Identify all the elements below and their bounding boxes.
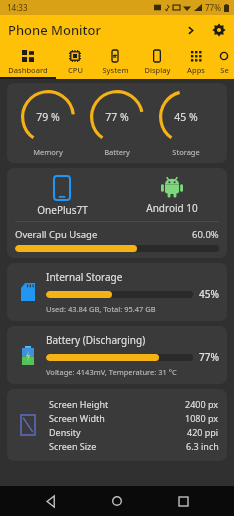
staticText: Screen Width <box>49 412 105 424</box>
staticText: 420 ppi <box>187 426 219 438</box>
button[interactable]: Screen Height <box>7 389 227 461</box>
staticText: System <box>102 65 129 75</box>
staticText: Overall Cpu Usage <box>15 228 98 241</box>
staticText: Voltage: 4143mV, Temperature: 31 °C <box>46 367 177 377</box>
button[interactable]: OnePlus7T <box>7 176 117 217</box>
button[interactable]: 79 % <box>7 83 227 163</box>
staticText: Storage <box>172 147 200 157</box>
staticText: 77 % <box>105 110 129 124</box>
staticText: 60.0% <box>192 228 219 241</box>
button[interactable]: Display <box>136 45 178 79</box>
button[interactable]: Settings <box>204 15 234 45</box>
staticText: Se <box>220 65 229 75</box>
staticText: Android 10 <box>146 201 198 215</box>
staticText: 14:33 <box>7 2 28 13</box>
button[interactable]: CPU <box>56 45 94 79</box>
button[interactable]: Internal Storage <box>7 263 227 321</box>
staticText: Internal Storage <box>46 270 123 284</box>
button[interactable]: Apps <box>178 45 214 79</box>
staticText: 77% <box>199 350 219 364</box>
staticText: Screen Size <box>49 440 97 452</box>
staticText: Screen Height <box>49 398 109 410</box>
staticText: Apps <box>187 65 205 75</box>
staticText: Display <box>144 65 171 75</box>
button[interactable]: More <box>176 16 204 44</box>
button[interactable]: Back <box>36 486 66 516</box>
staticText: OnePlus7T <box>37 203 88 217</box>
staticText: 6.3 inch <box>186 440 219 452</box>
staticText: Battery (Discharging) <box>46 333 146 347</box>
staticText: Density <box>49 426 81 438</box>
staticText: 45 % <box>174 110 198 124</box>
button[interactable]: Home <box>102 486 132 516</box>
staticText: 1080 px <box>185 412 219 424</box>
staticText: Battery <box>104 147 130 157</box>
button[interactable]: Dashboard <box>0 45 56 79</box>
button[interactable]: Android 10 <box>117 176 227 215</box>
staticText: 79 % <box>36 110 60 124</box>
button[interactable]: Se <box>214 45 234 79</box>
staticText: CPU <box>68 65 83 75</box>
button[interactable]: OnePlus7T <box>7 168 227 258</box>
staticText: Dashboard <box>8 65 48 75</box>
button[interactable]: Recents <box>168 486 198 516</box>
staticText: 45% <box>199 287 219 301</box>
staticText: Used: 43.84 GB, Total: 95.47 GB <box>46 304 156 314</box>
staticText: Memory <box>33 147 63 157</box>
staticText: 77% <box>205 2 221 13</box>
staticText: Phone Monitor <box>8 21 101 39</box>
staticText: 2400 px <box>185 398 219 410</box>
button[interactable]: Battery (Discharging) <box>7 326 227 384</box>
button[interactable]: System <box>94 45 136 79</box>
